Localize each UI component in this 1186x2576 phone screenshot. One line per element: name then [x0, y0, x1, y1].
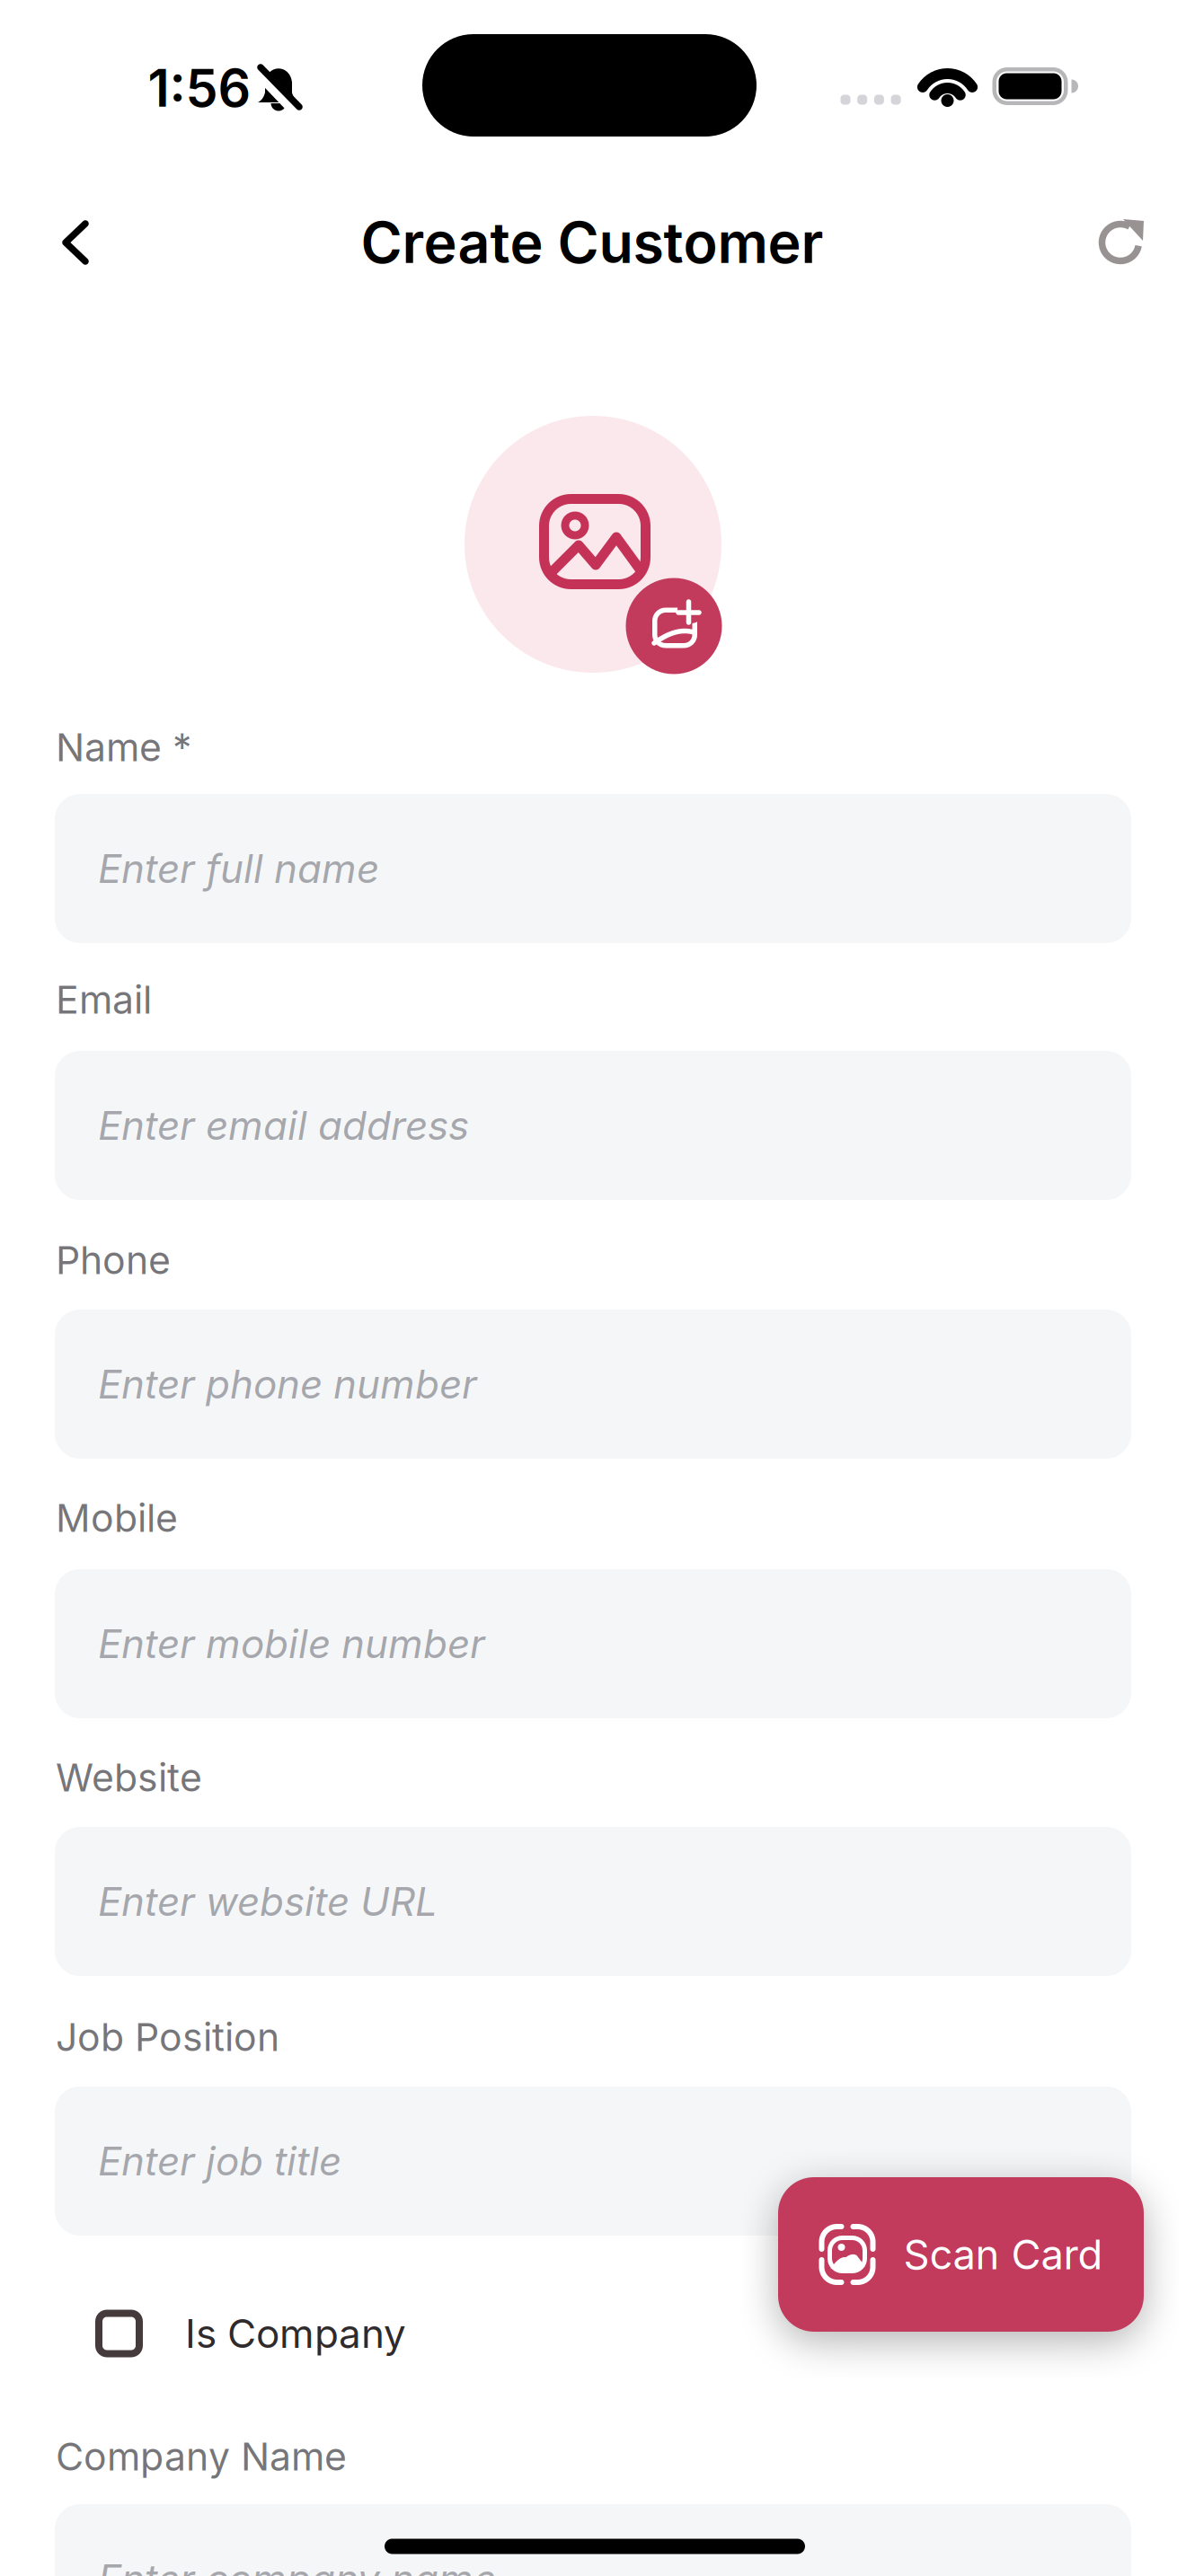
staticText: Enter phone number — [98, 1361, 477, 1407]
staticText: Scan Card — [903, 2230, 1103, 2279]
button[interactable]: Refresh — [1067, 189, 1174, 296]
button[interactable]: Email — [55, 1051, 1131, 1200]
button[interactable]: Phone — [55, 1310, 1131, 1459]
staticText: Create Customer — [361, 209, 823, 276]
staticText: Name * — [56, 725, 191, 770]
button[interactable]: Back — [17, 184, 134, 301]
button[interactable]: Mobile — [55, 1569, 1131, 1718]
button[interactable]: Company Name — [55, 2504, 1131, 2576]
staticText: 1:56 — [148, 58, 251, 118]
button[interactable]: Scan Card — [778, 2177, 1144, 2332]
staticText: Enter website URL — [98, 1878, 438, 1925]
staticText: Email — [56, 977, 152, 1022]
button[interactable]: Name * — [55, 794, 1131, 943]
button[interactable]: Website — [55, 1827, 1131, 1976]
button[interactable]: Add photo — [464, 415, 722, 674]
staticText: Enter job title — [98, 2138, 341, 2184]
staticText: Enter email address — [98, 1102, 469, 1149]
staticText: Is Company — [185, 2310, 406, 2357]
staticText: Enter mobile number — [98, 1620, 485, 1667]
button[interactable]: Job Position — [55, 2086, 1131, 2236]
button[interactable]: Is Company — [95, 2301, 562, 2366]
staticText: Job Position — [56, 2014, 279, 2060]
staticText: Enter company name — [98, 2555, 496, 2576]
staticText: Enter full name — [98, 845, 379, 892]
staticText: Phone — [56, 1238, 171, 1283]
staticText: Company Name — [56, 2434, 347, 2479]
staticText: Website — [56, 1755, 202, 1800]
staticText: Mobile — [56, 1495, 178, 1540]
